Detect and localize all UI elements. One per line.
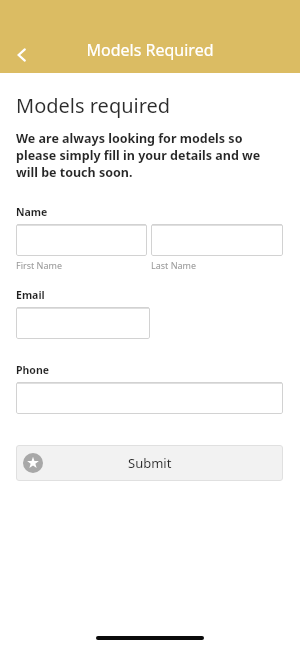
button[interactable]: First Name [16,224,147,256]
staticText: Submit [128,454,172,472]
button[interactable]: Email [16,307,150,339]
staticText: Phone [16,363,50,377]
staticText: Models Required [0,39,300,61]
staticText: First Name [16,259,62,271]
staticText: Name [16,205,48,219]
button[interactable]: Back [8,41,36,69]
staticText: Email [16,288,45,302]
staticText: Last Name [151,259,197,271]
staticText: Models required [16,92,171,119]
staticText: We are always looking for models so plea… [16,130,283,181]
button[interactable]: Submit [16,445,283,481]
button[interactable]: Phone [16,382,283,414]
button[interactable]: Last Name [151,224,283,256]
